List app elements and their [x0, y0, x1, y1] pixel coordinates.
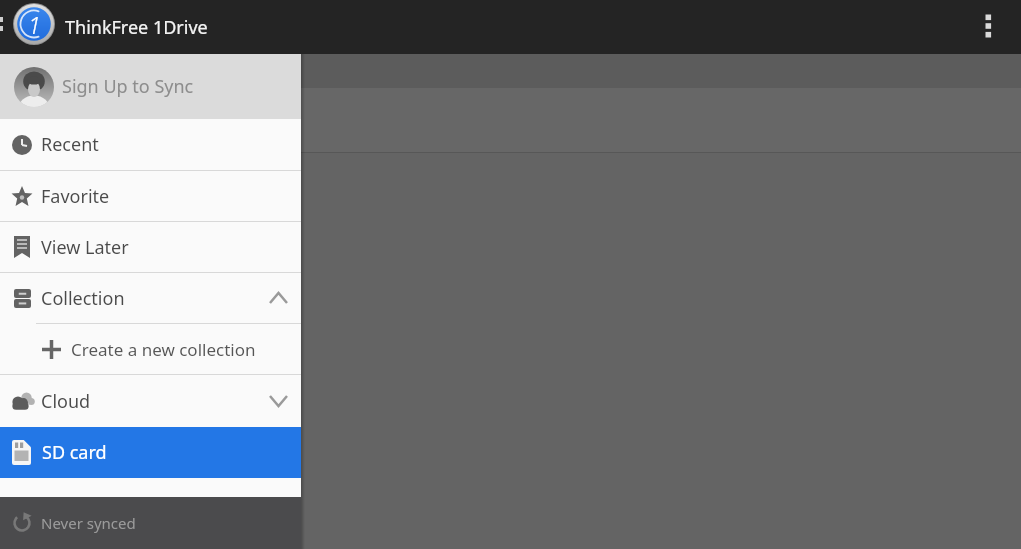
button[interactable]	[973, 0, 1021, 54]
button[interactable]: Collection	[0, 273, 301, 323]
button[interactable]: Create a new collection	[0, 324, 301, 374]
staticText: SD card	[42, 440, 107, 465]
staticText: Sign Up to Sync	[62, 74, 194, 99]
staticText: Create a new collection	[71, 338, 256, 361]
staticText: Cloud	[41, 389, 91, 414]
staticText: Never synced	[41, 513, 136, 533]
button[interactable]: Sign Up to Sync	[0, 54, 301, 119]
button[interactable]: Never synced	[0, 497, 301, 549]
button[interactable]: Cloud	[0, 375, 301, 427]
staticText: ThinkFree 1Drive	[65, 15, 208, 40]
staticText: 1	[28, 9, 41, 40]
staticText: Recent	[41, 132, 99, 157]
staticText: Favorite	[41, 184, 110, 209]
button[interactable]: Favorite	[0, 171, 301, 221]
staticText: View Later	[41, 235, 129, 260]
button[interactable]: SD card	[0, 427, 301, 478]
button[interactable]	[13, 3, 55, 45]
staticText: Collection	[41, 286, 125, 311]
button[interactable]: View Later	[0, 222, 301, 272]
button[interactable]: Recent	[0, 119, 301, 170]
